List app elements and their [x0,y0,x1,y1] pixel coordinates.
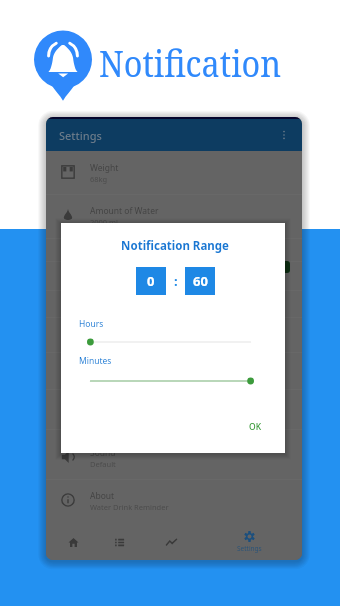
button[interactable]: More options [275,126,293,144]
button[interactable]: History [96,525,142,560]
staticText: Default [90,459,116,469]
button[interactable]: Sound [46,436,302,479]
button[interactable]: About [46,479,302,522]
staticText: Settings [237,544,262,553]
button[interactable]: Home [50,525,96,560]
staticText: About [90,490,115,502]
button[interactable]: Settings [226,525,272,560]
staticText: OK [249,421,262,433]
staticText: Notification Range [63,238,287,254]
staticText: Water Drink Reminder [90,502,169,512]
button[interactable]: OK [234,416,276,438]
button[interactable]: 60 [185,267,215,295]
button[interactable]: Weight [46,151,302,194]
staticText: Hours [79,318,104,330]
staticText: 60 [193,272,208,290]
button[interactable]: 0 [136,267,166,295]
staticText: Minutes [79,355,112,367]
staticText: Sound [90,447,116,459]
staticText: : [174,272,178,290]
staticText: Settings [59,128,102,143]
staticText: 2000 ml [90,217,119,227]
staticText: 68kg [90,174,108,184]
button[interactable]: Amount of Water [46,194,302,237]
staticText: Notification [99,37,282,87]
button[interactable]: Statistics [148,525,194,560]
staticText: Weight [90,162,119,174]
staticText: 0 [147,272,155,290]
staticText: Amount of Water [90,205,159,217]
